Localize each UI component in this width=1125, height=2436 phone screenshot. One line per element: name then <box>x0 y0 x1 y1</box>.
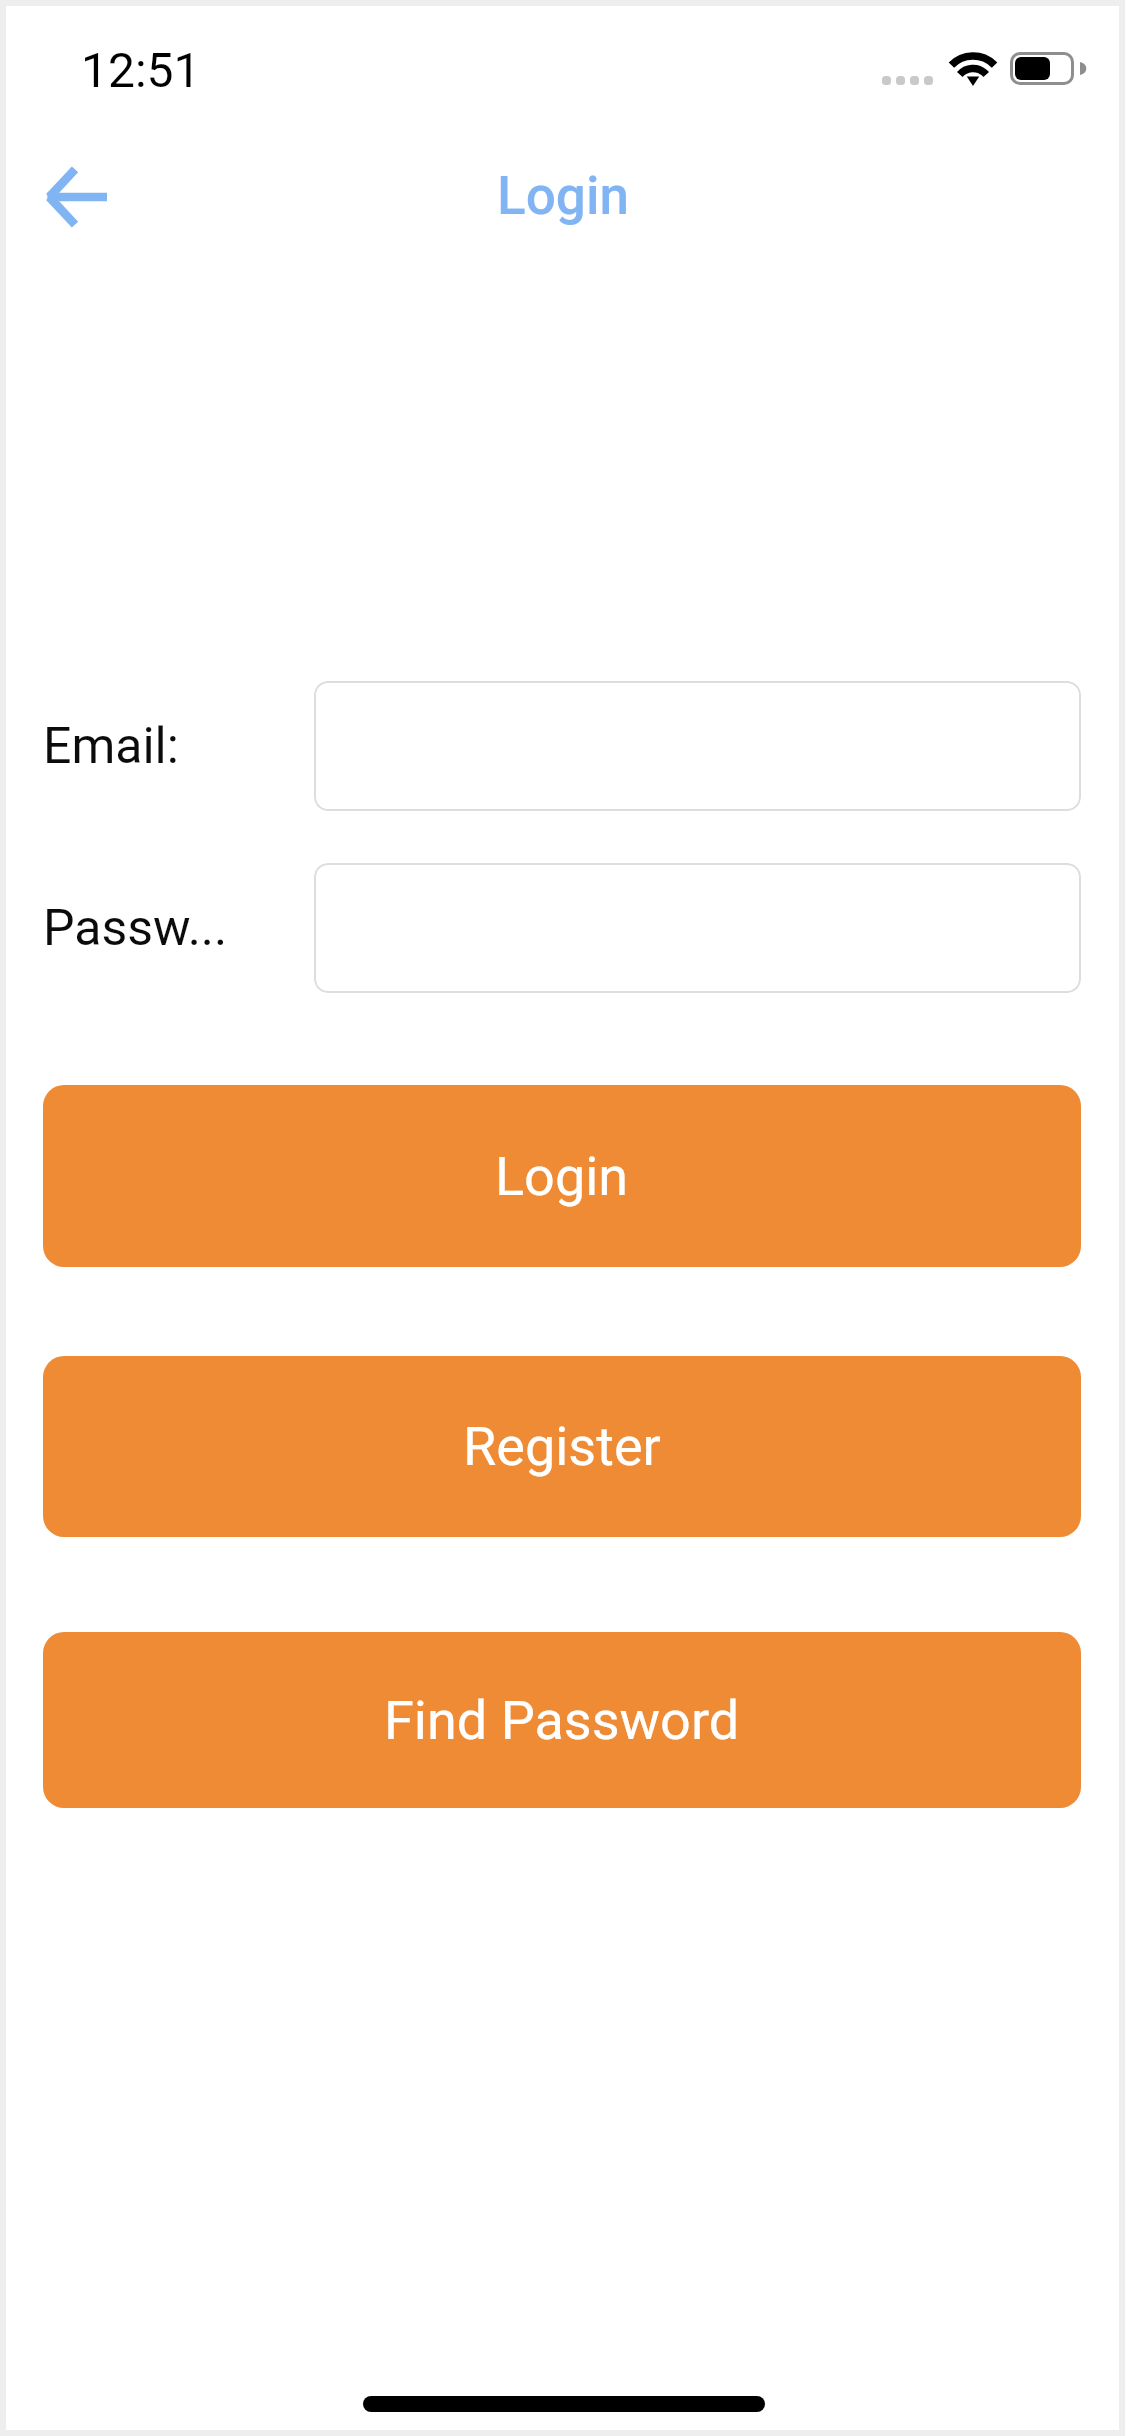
button[interactable]: Find Password <box>43 1632 1081 1808</box>
staticText: Register <box>463 1415 661 1478</box>
button[interactable]: Back <box>26 156 120 249</box>
staticText: 12:51 <box>81 42 201 98</box>
button[interactable] <box>314 863 1081 993</box>
button[interactable]: Register <box>43 1356 1081 1537</box>
staticText: Passw... <box>43 899 228 958</box>
button[interactable] <box>314 681 1081 811</box>
staticText: Login <box>495 1145 629 1208</box>
staticText: Email: <box>43 717 179 776</box>
button[interactable]: Login <box>43 1085 1081 1267</box>
staticText: Find Password <box>384 1689 740 1752</box>
staticText: Login <box>497 165 629 227</box>
